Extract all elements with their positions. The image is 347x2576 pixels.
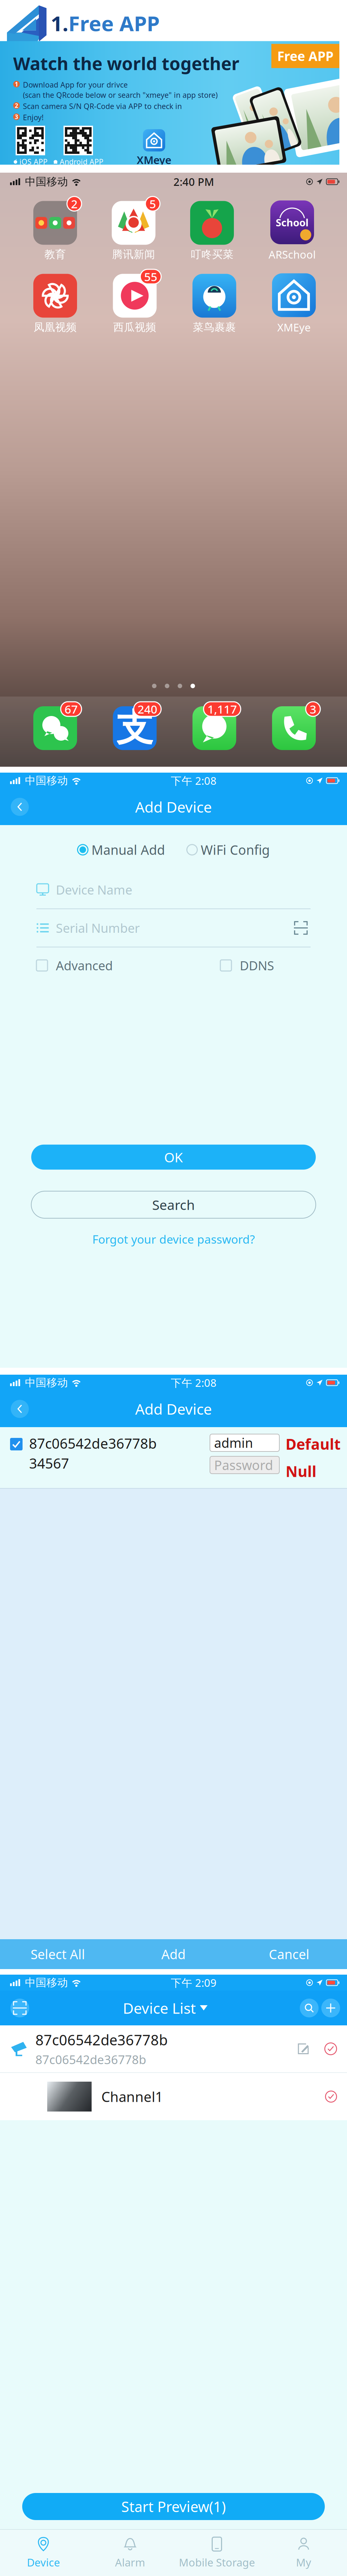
staticText: Select All <box>31 1946 85 1963</box>
button[interactable]: Advanced <box>36 957 113 974</box>
staticText: 67 <box>65 701 78 717</box>
staticText: 凤凰视频 <box>34 321 77 334</box>
staticText: Search <box>152 1196 195 1214</box>
staticText: (scan the QRcode below or search "xmeye"… <box>23 90 218 100</box>
staticText: 支 <box>116 705 153 751</box>
staticText: Watch the world together <box>13 52 239 75</box>
staticText: Null <box>286 1461 316 1481</box>
staticText: 叮咚买菜 <box>191 248 234 261</box>
staticText: 87c06542de36778b <box>35 2051 146 2067</box>
staticText: Add Device <box>135 1399 212 1419</box>
staticText: 下午 2:08 <box>171 774 217 788</box>
staticText: WiFi Config <box>201 841 270 858</box>
staticText: ARSchool <box>269 247 316 261</box>
staticText: Download App for your drivce <box>23 80 128 90</box>
staticText: Advanced <box>56 957 113 974</box>
button[interactable]: Alarm <box>87 2530 173 2575</box>
staticText: Free APP <box>277 47 333 65</box>
staticText: 3 <box>310 701 316 717</box>
staticText: DDNS <box>240 957 274 974</box>
staticText: Forgot your device password? <box>92 1231 255 1247</box>
button[interactable]: WiFi Config <box>187 841 270 858</box>
button[interactable]: 87c06542de36778b <box>0 2025 347 2072</box>
staticText: 教育 <box>44 248 66 261</box>
staticText: School <box>276 216 309 229</box>
staticText: Device List <box>123 1998 196 2018</box>
button[interactable]: Forgot your device password? <box>90 1229 257 1250</box>
staticText: Enjoy! <box>23 112 44 122</box>
button[interactable]: Device <box>0 2530 87 2575</box>
staticText: 87c06542de36778b <box>29 1434 157 1453</box>
staticText: Cancel <box>269 1946 309 1963</box>
staticText: Device <box>27 2555 60 2569</box>
staticText: admin <box>214 1434 253 1451</box>
button[interactable]: Cancel <box>231 1939 347 1969</box>
staticText: Default <box>286 1434 341 1454</box>
button[interactable]: Scan <box>8 1996 32 2020</box>
button[interactable]: Back <box>8 1397 32 1421</box>
staticText: Scan camera S/N QR-Code via APP to check… <box>23 101 182 111</box>
staticText: Alarm <box>115 2555 145 2569</box>
button[interactable]: Add <box>116 1939 231 1969</box>
button[interactable]: Channel1 <box>0 2073 347 2120</box>
button[interactable]: Select All <box>0 1939 116 1969</box>
button[interactable]: Add device <box>320 1996 341 2020</box>
staticText: 菜鸟裹裹 <box>193 321 236 334</box>
staticText: 中国移动 <box>25 175 68 188</box>
staticText: Password <box>214 1456 273 1474</box>
staticText: 5 <box>149 196 156 211</box>
staticText: 中国移动 <box>25 774 68 787</box>
staticText: 中国移动 <box>25 1376 68 1389</box>
staticText: 西瓜视频 <box>113 321 156 334</box>
button[interactable]: Search <box>298 1996 320 2020</box>
button[interactable]: Select device <box>8 1436 24 1452</box>
button[interactable]: Manual Add <box>77 841 165 858</box>
staticText: Android APP <box>60 157 103 166</box>
button[interactable]: Back <box>8 795 32 819</box>
staticText: 240 <box>138 701 157 717</box>
staticText: 中国移动 <box>25 1976 68 1989</box>
staticText: My <box>296 2555 311 2569</box>
staticText: 1,117 <box>207 701 237 717</box>
staticText: Serial Number <box>56 920 140 936</box>
staticText: 下午 2:08 <box>171 1376 217 1390</box>
staticText: Manual Add <box>91 841 165 858</box>
staticText: iOS APP <box>19 157 48 166</box>
staticText: Mobile Storage <box>179 2555 255 2569</box>
button[interactable]: OK <box>31 1145 316 1170</box>
staticText: 3 <box>15 113 18 121</box>
button[interactable]: Search <box>31 1191 316 1218</box>
staticText: 1. <box>51 9 68 37</box>
staticText: 2:40 PM <box>173 175 214 189</box>
button[interactable]: My <box>260 2530 347 2575</box>
staticText: 2 <box>71 196 78 211</box>
staticText: 34567 <box>29 1454 69 1472</box>
button[interactable]: DDNS <box>220 957 274 974</box>
staticText: OK <box>164 1148 183 1166</box>
staticText: Add Device <box>135 797 212 817</box>
button[interactable]: Scan QR code <box>291 918 311 938</box>
staticText: Channel1 <box>101 2087 163 2106</box>
staticText: Free APP <box>68 9 160 37</box>
staticText: 87c06542de36778b <box>35 2030 168 2049</box>
staticText: XMeye <box>137 153 171 167</box>
button[interactable]: Device List <box>123 1998 208 2018</box>
button[interactable]: Start Preview(1) <box>22 2493 325 2520</box>
staticText: 1 <box>15 80 18 88</box>
staticText: 2 <box>15 102 18 110</box>
staticText: Device Name <box>56 881 132 898</box>
staticText: XMEye <box>277 320 311 334</box>
staticText: 55 <box>144 269 157 284</box>
staticText: Add <box>161 1946 186 1963</box>
staticText: 腾讯新闻 <box>112 248 155 261</box>
button[interactable]: Mobile Storage <box>173 2530 260 2575</box>
staticText: Start Preview(1) <box>121 2497 226 2516</box>
staticText: 下午 2:09 <box>171 1976 217 1990</box>
